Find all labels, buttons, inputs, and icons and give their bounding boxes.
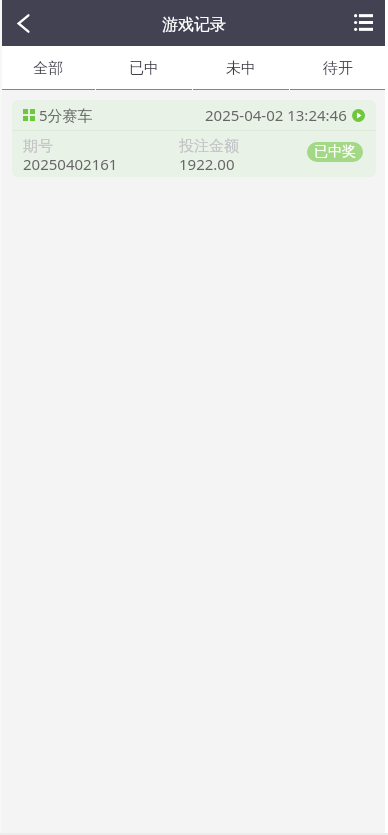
staticText: 2025-04-02 13:24:46 bbox=[205, 105, 347, 125]
staticText: 5分赛车 bbox=[39, 105, 93, 125]
button[interactable]: 全部 bbox=[0, 46, 96, 89]
staticText: 1922.00 bbox=[179, 154, 235, 174]
button[interactable]: Menu bbox=[340, 0, 386, 44]
button[interactable]: 已中奖 bbox=[307, 142, 363, 162]
staticText: 20250402161 bbox=[23, 154, 118, 174]
staticText: 游戏记录 bbox=[162, 15, 226, 35]
button[interactable]: Back bbox=[0, 0, 46, 46]
staticText: 期号 bbox=[23, 137, 53, 156]
staticText: 待开 bbox=[323, 59, 353, 78]
staticText: 未中 bbox=[226, 59, 256, 78]
button[interactable]: 5分赛车 bbox=[12, 100, 376, 177]
staticText: 全部 bbox=[33, 59, 63, 78]
button[interactable]: 已中 bbox=[96, 46, 192, 89]
staticText: 已中 bbox=[129, 59, 159, 78]
staticText: 投注金额 bbox=[179, 137, 239, 156]
button[interactable]: 待开 bbox=[289, 46, 386, 89]
button[interactable]: 未中 bbox=[192, 46, 289, 89]
staticText: 已中奖 bbox=[314, 143, 356, 161]
